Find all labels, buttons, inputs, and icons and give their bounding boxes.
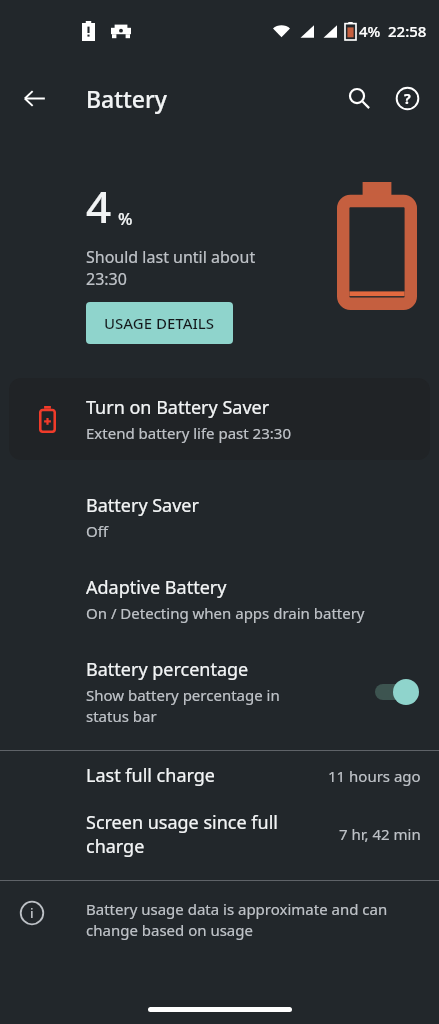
button[interactable]: Battery Saver <box>0 476 439 558</box>
staticText: Show battery percentage in status bar <box>86 685 280 727</box>
button[interactable]: Back <box>10 74 58 122</box>
staticText: Battery <box>86 83 167 114</box>
staticText: Should last until about 23:30 <box>86 246 256 290</box>
staticText: USAGE DETAILS <box>104 313 215 333</box>
staticText: 11 hours ago <box>328 766 421 786</box>
staticText: 7 hr, 42 min <box>339 824 421 844</box>
staticText: Turn on Battery Saver <box>86 395 270 420</box>
button[interactable]: Turn on Battery Saver <box>9 378 430 460</box>
staticText: % <box>118 207 133 230</box>
staticText: Adaptive Battery <box>86 575 227 600</box>
staticText: Battery Saver <box>86 493 199 518</box>
staticText: Battery usage data is approximate and ca… <box>86 899 388 941</box>
button[interactable]: Adaptive Battery <box>0 558 439 640</box>
button[interactable]: Screen usage since full charge <box>0 810 439 858</box>
staticText: On / Detecting when apps drain battery <box>86 603 365 623</box>
staticText: Off <box>86 521 109 541</box>
staticText: Screen usage since full charge <box>86 810 329 858</box>
staticText: i <box>30 904 34 922</box>
button[interactable]: Last full charge <box>0 763 439 788</box>
staticText: 22:58 <box>388 21 427 41</box>
staticText: Extend battery life past 23:30 <box>86 423 291 443</box>
button[interactable]: Search <box>335 74 383 122</box>
button[interactable]: Help <box>383 74 431 122</box>
staticText: 4 <box>86 176 112 236</box>
staticText: Battery percentage <box>86 657 249 682</box>
button[interactable]: Battery percentage <box>0 640 439 739</box>
staticText: Last full charge <box>86 763 318 788</box>
staticText: 4% <box>359 21 381 41</box>
button[interactable]: USAGE DETAILS <box>86 302 233 344</box>
staticText: ? <box>404 89 411 108</box>
